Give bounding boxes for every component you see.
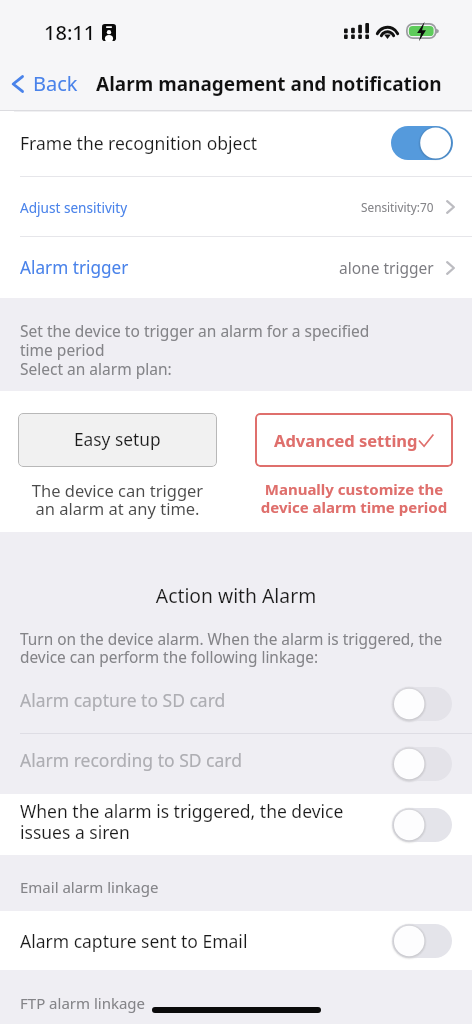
- staticText: Alarm capture to SD card: [20, 688, 226, 712]
- staticText: Alarm trigger: [20, 256, 129, 279]
- staticText: The device can trigger an alarm at any t…: [18, 479, 217, 520]
- button[interactable]: Toggle: [386, 742, 458, 786]
- staticText: Turn on the device alarm. When the alarm…: [20, 629, 443, 668]
- staticText: When the alarm is triggered, the device …: [20, 799, 344, 844]
- staticText: Sensitivity:70: [361, 199, 434, 215]
- button[interactable]: Alarm recording to SD card: [0, 734, 472, 794]
- staticText: 18:11: [44, 19, 96, 46]
- button[interactable]: Toggle: [386, 919, 458, 963]
- staticText: Set the device to trigger an alarm for a…: [20, 320, 370, 379]
- staticText: Action with Alarm: [0, 582, 472, 608]
- button[interactable]: Easy setup: [18, 413, 217, 467]
- staticText: Advanced setting: [274, 429, 418, 451]
- staticText: Frame the recognition object: [20, 131, 258, 155]
- staticText: FTP alarm linkage: [20, 993, 146, 1013]
- staticText: Email alarm linkage: [20, 877, 159, 897]
- staticText: Alarm capture sent to Email: [20, 929, 248, 953]
- staticText: Easy setup: [74, 428, 161, 452]
- button[interactable]: Toggle: [386, 121, 458, 165]
- button[interactable]: Alarm trigger: [0, 237, 472, 298]
- staticText: Back: [33, 70, 78, 97]
- staticText: Adjust sensitivity: [20, 198, 128, 217]
- staticText: Alarm management and notification: [96, 71, 442, 97]
- button[interactable]: Advanced setting: [255, 413, 453, 467]
- staticText: alone trigger: [339, 257, 434, 278]
- button[interactable]: Toggle: [386, 682, 458, 726]
- button[interactable]: When the alarm is triggered, the device …: [0, 794, 472, 855]
- button[interactable]: Alarm capture to SD card: [0, 674, 472, 734]
- button[interactable]: Toggle: [386, 803, 458, 847]
- staticText: Manually customize the device alarm time…: [255, 479, 453, 518]
- button[interactable]: Back: [0, 64, 86, 103]
- staticText: Alarm recording to SD card: [20, 748, 242, 772]
- button[interactable]: Alarm capture sent to Email: [0, 911, 472, 970]
- button[interactable]: Frame the recognition object: [0, 111, 472, 177]
- button[interactable]: Adjust sensitivity: [0, 177, 472, 237]
